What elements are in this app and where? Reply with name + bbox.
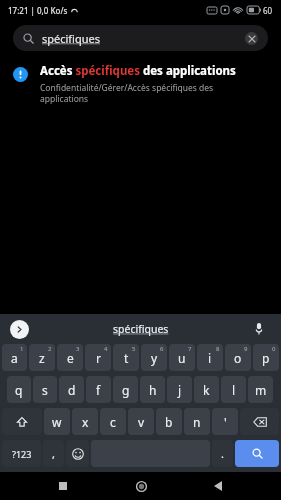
- button[interactable]: ': [212, 408, 238, 435]
- button[interactable]: q: [7, 376, 31, 403]
- staticText: 8: [216, 345, 220, 353]
- staticText: j: [178, 382, 182, 398]
- staticText: b: [165, 414, 173, 430]
- staticText: y: [151, 350, 158, 366]
- button[interactable]: p: [253, 344, 279, 371]
- staticText: p: [262, 350, 270, 366]
- button[interactable]: t: [113, 344, 139, 371]
- staticText: 4: [104, 345, 108, 353]
- staticText: r: [96, 350, 101, 366]
- staticText: 60: [263, 5, 273, 16]
- button[interactable]: d: [59, 376, 84, 403]
- button[interactable]: ,: [43, 440, 64, 467]
- button[interactable]: w: [44, 408, 70, 435]
- button[interactable]: e: [57, 344, 83, 371]
- button[interactable]: ?123: [2, 440, 41, 467]
- button[interactable]: Emoji: [66, 440, 89, 467]
- staticText: 1: [20, 345, 24, 353]
- button[interactable]: f: [86, 376, 111, 403]
- staticText: 17:21 | 0,0 Ko/s: [8, 5, 68, 16]
- staticText: d: [68, 382, 76, 398]
- button[interactable]: s: [33, 376, 57, 403]
- staticText: n: [193, 414, 201, 430]
- button[interactable]: b: [156, 408, 182, 435]
- button[interactable]: Shift: [2, 408, 42, 435]
- button[interactable]: spécifiques: [109, 318, 173, 340]
- staticText: w: [52, 414, 62, 430]
- staticText: Confidentialité/Gérer/Accès spécifiques …: [40, 82, 214, 104]
- button[interactable]: z: [29, 344, 55, 371]
- button[interactable]: v: [128, 408, 154, 435]
- staticText: ,: [52, 446, 55, 461]
- staticText: i: [208, 350, 212, 366]
- staticText: h: [149, 382, 157, 398]
- button[interactable]: More suggestions: [10, 320, 29, 339]
- staticText: 7: [188, 345, 192, 353]
- button[interactable]: Clear search: [245, 32, 258, 45]
- button[interactable]: Home: [127, 472, 155, 500]
- staticText: 6: [160, 345, 164, 353]
- staticText: .: [221, 446, 224, 461]
- button[interactable]: o: [225, 344, 251, 371]
- button[interactable]: Voice input: [249, 319, 269, 339]
- button[interactable]: i: [197, 344, 223, 371]
- staticText: Accès spécifiques des applications: [40, 63, 236, 79]
- button[interactable]: Back: [204, 472, 232, 500]
- staticText: 5: [132, 345, 136, 353]
- staticText: spécifiques: [42, 31, 101, 46]
- button[interactable]: n: [184, 408, 210, 435]
- button[interactable]: Accès spécifiques des applications: [0, 59, 281, 110]
- button[interactable]: k: [194, 376, 219, 403]
- staticText: e: [67, 350, 74, 366]
- button[interactable]: a: [2, 344, 27, 371]
- staticText: g: [122, 382, 130, 398]
- staticText: spécifiques: [113, 322, 169, 336]
- staticText: ?123: [12, 448, 32, 460]
- button[interactable]: Backspace: [240, 408, 279, 435]
- button[interactable]: y: [141, 344, 167, 371]
- button[interactable]: j: [167, 376, 192, 403]
- staticText: 2: [48, 345, 52, 353]
- button[interactable]: .: [212, 440, 233, 467]
- staticText: s: [42, 382, 48, 398]
- staticText: 0: [272, 345, 276, 353]
- staticText: a: [11, 350, 18, 366]
- staticText: v: [138, 414, 145, 430]
- button[interactable]: u: [169, 344, 195, 371]
- staticText: o: [234, 350, 242, 366]
- staticText: f: [96, 382, 101, 398]
- staticText: c: [110, 414, 116, 430]
- button[interactable]: h: [140, 376, 165, 403]
- button[interactable]: g: [113, 376, 138, 403]
- staticText: k: [203, 382, 210, 398]
- button[interactable]: x: [72, 408, 98, 435]
- staticText: z: [39, 350, 45, 366]
- button[interactable]: m: [248, 376, 273, 403]
- staticText: q: [15, 382, 23, 398]
- staticText: x: [82, 414, 89, 430]
- button[interactable]: c: [100, 408, 126, 435]
- staticText: l: [232, 382, 236, 398]
- staticText: u: [178, 350, 186, 366]
- button[interactable]: Search: [235, 440, 279, 467]
- staticText: 3: [76, 345, 80, 353]
- button[interactable]: spécifiques: [13, 25, 268, 51]
- staticText: 9: [244, 345, 248, 353]
- staticText: t: [124, 350, 129, 366]
- staticText: ': [224, 414, 227, 430]
- button[interactable]: r: [85, 344, 111, 371]
- staticText: m: [255, 382, 267, 398]
- button[interactable]: l: [221, 376, 246, 403]
- button[interactable]: Recents: [49, 472, 77, 500]
